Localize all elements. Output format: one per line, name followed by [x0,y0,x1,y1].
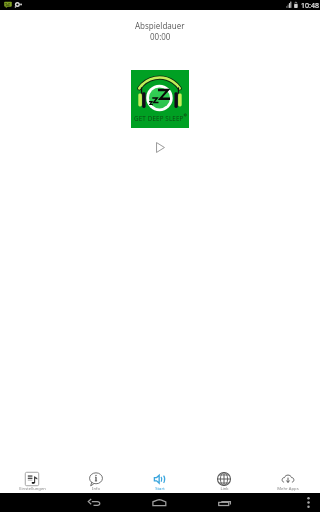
button[interactable]: Start [128,463,192,492]
staticText: Start [155,486,165,492]
staticText: Info [92,486,100,492]
staticText: 00:00 [150,31,171,42]
staticText: Abspieldauer [135,20,185,31]
staticText: GET DEEP SLEEP [134,114,184,122]
button[interactable]: Mehr Apps [256,463,320,492]
button[interactable]: Abspielen [148,135,172,159]
button[interactable]: Info [64,463,128,492]
staticText: Link [220,486,229,492]
button[interactable]: Einstellungen [0,463,64,492]
staticText: Einstellungen [19,486,46,492]
button[interactable]: Startbildschirm [137,493,181,512]
button[interactable]: Link [192,463,256,492]
staticText: Mehr Apps [277,486,299,492]
staticText: 10:48 [301,1,319,11]
button[interactable]: Weitere Optionen [298,493,320,512]
button[interactable]: Zurück [72,493,116,512]
button[interactable]: Zuletzt verwendet [202,493,246,512]
